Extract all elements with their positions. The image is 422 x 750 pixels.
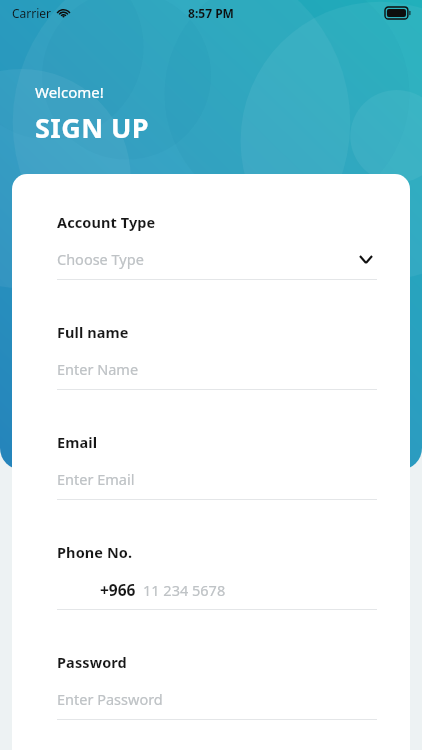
staticText: Enter Name xyxy=(57,359,139,379)
button[interactable]: Phone No. xyxy=(57,542,377,610)
staticText: Email xyxy=(57,432,98,452)
staticText: SIGN UP xyxy=(35,109,149,146)
button[interactable]: Account Type xyxy=(57,212,377,280)
staticText: 8:57 PM xyxy=(188,5,234,21)
staticText: Enter Email xyxy=(57,469,135,489)
staticText: Choose Type xyxy=(57,249,144,269)
staticText: Password xyxy=(57,652,127,672)
staticText: Enter Password xyxy=(57,689,163,709)
staticText: +966 xyxy=(100,579,136,600)
staticText: Account Type xyxy=(57,212,156,232)
button[interactable]: Password xyxy=(57,652,377,720)
staticText: Carrier xyxy=(12,5,52,21)
button[interactable]: Full name xyxy=(57,322,377,390)
staticText: Welcome! xyxy=(35,82,104,102)
button[interactable]: Email xyxy=(57,432,377,500)
staticText: Full name xyxy=(57,322,129,342)
staticText: Phone No. xyxy=(57,542,133,562)
staticText: 11 234 5678 xyxy=(143,580,226,600)
button[interactable]: Choose account type xyxy=(355,248,377,270)
